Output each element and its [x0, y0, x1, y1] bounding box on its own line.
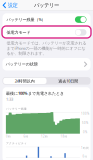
- button[interactable]: 低電力モード: [2, 26, 90, 39]
- staticText: バッテリー残量（%）: [6, 17, 45, 22]
- staticText: 0%: [83, 130, 87, 134]
- button[interactable]: 設定: [0, 0, 17, 11]
- button[interactable]: バッテリーの状態: [2, 58, 90, 70]
- button[interactable]: 24時間以内: [3, 78, 46, 84]
- button[interactable]: バッテリー残量（%）: [2, 13, 90, 26]
- button[interactable]: 過去10日間: [46, 78, 90, 84]
- staticText: 0分: [83, 155, 88, 158]
- staticText: バッテリー残量: [6, 107, 27, 110]
- staticText: 低電力モードでは、バッテリーが充電されるまでiPhoneの一部の機能が一時的にオ…: [6, 41, 86, 56]
- staticText: 50%: [82, 121, 88, 125]
- staticText: アクティビティ: [6, 142, 27, 145]
- staticText: 1:33: [6, 96, 13, 102]
- staticText: 100%: [81, 112, 89, 115]
- staticText: 18時: [60, 135, 67, 138]
- staticText: 最後に100%まで充電されたとき: [6, 91, 64, 96]
- staticText: 低電力モード: [6, 30, 30, 35]
- staticText: バッテリーの状態: [6, 62, 38, 67]
- staticText: 設定: [7, 2, 17, 9]
- staticText: 1時間: [81, 146, 89, 150]
- staticText: 6時: [23, 135, 28, 138]
- staticText: 12時: [41, 135, 48, 138]
- staticText: 過去10日間: [58, 78, 78, 83]
- staticText: 0時: [6, 135, 11, 138]
- staticText: バッテリー: [34, 2, 59, 9]
- staticText: 24時間以内: [15, 78, 35, 83]
